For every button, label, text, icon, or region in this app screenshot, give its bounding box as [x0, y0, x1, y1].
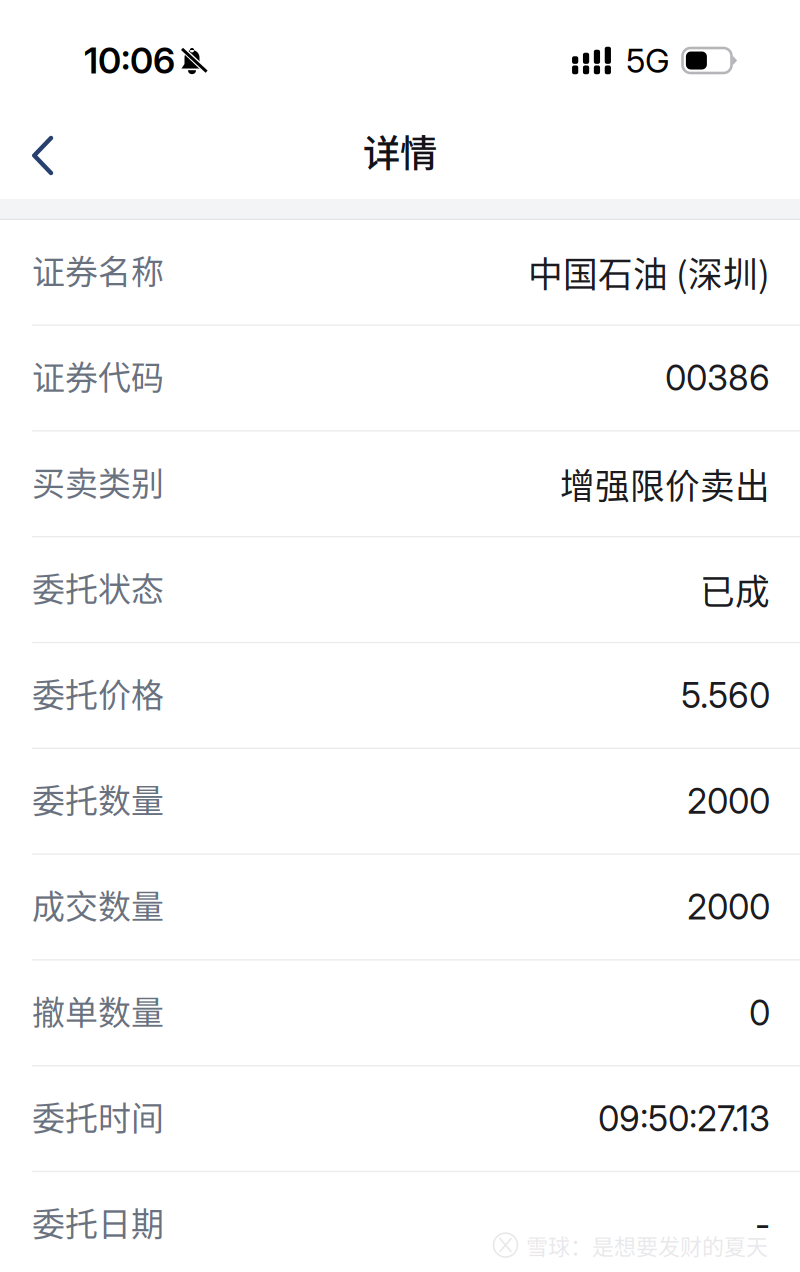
staticText: 2000 — [687, 780, 770, 822]
staticText: 委托状态 — [32, 563, 164, 611]
staticText: 成交数量 — [32, 881, 164, 928]
staticText: 5G — [626, 40, 670, 81]
button[interactable]: 委托日期 — [0, 1172, 800, 1272]
button[interactable]: 成交数量 — [0, 855, 800, 961]
staticText: 00386 — [665, 357, 770, 399]
staticText: - — [755, 1203, 770, 1245]
button[interactable]: Back — [0, 116, 79, 195]
staticText: 证券名称 — [32, 246, 164, 294]
staticText: 2000 — [687, 886, 770, 928]
staticText: 10:06 — [84, 39, 175, 82]
staticText: 5.560 — [681, 674, 770, 716]
staticText: 09:50:27.13 — [598, 1098, 770, 1139]
staticText: 中国石油 (深圳) — [528, 247, 770, 297]
button[interactable]: 委托数量 — [0, 749, 800, 855]
staticText: 0 — [749, 992, 770, 1034]
button[interactable]: 委托价格 — [0, 643, 800, 749]
button[interactable]: 委托状态 — [0, 537, 800, 643]
button[interactable]: 证券代码 — [0, 326, 800, 432]
staticText: 详情 — [363, 124, 437, 178]
staticText: 委托时间 — [32, 1092, 164, 1140]
staticText: 撤单数量 — [32, 986, 164, 1034]
staticText: 委托价格 — [32, 669, 164, 717]
button[interactable]: 委托时间 — [0, 1066, 800, 1172]
button[interactable]: 撤单数量 — [0, 961, 800, 1066]
staticText: 委托日期 — [32, 1198, 164, 1246]
staticText: 增强限价卖出 — [560, 459, 770, 509]
staticText: 已成 — [700, 564, 770, 615]
staticText: 买卖类别 — [32, 457, 164, 505]
button[interactable]: 证券名称 — [0, 220, 800, 326]
button[interactable]: 买卖类别 — [0, 432, 800, 537]
staticText: 证券代码 — [32, 352, 164, 399]
staticText: 雪球：是想要发财的夏天 — [526, 1229, 768, 1261]
staticText: 委托数量 — [32, 775, 164, 823]
